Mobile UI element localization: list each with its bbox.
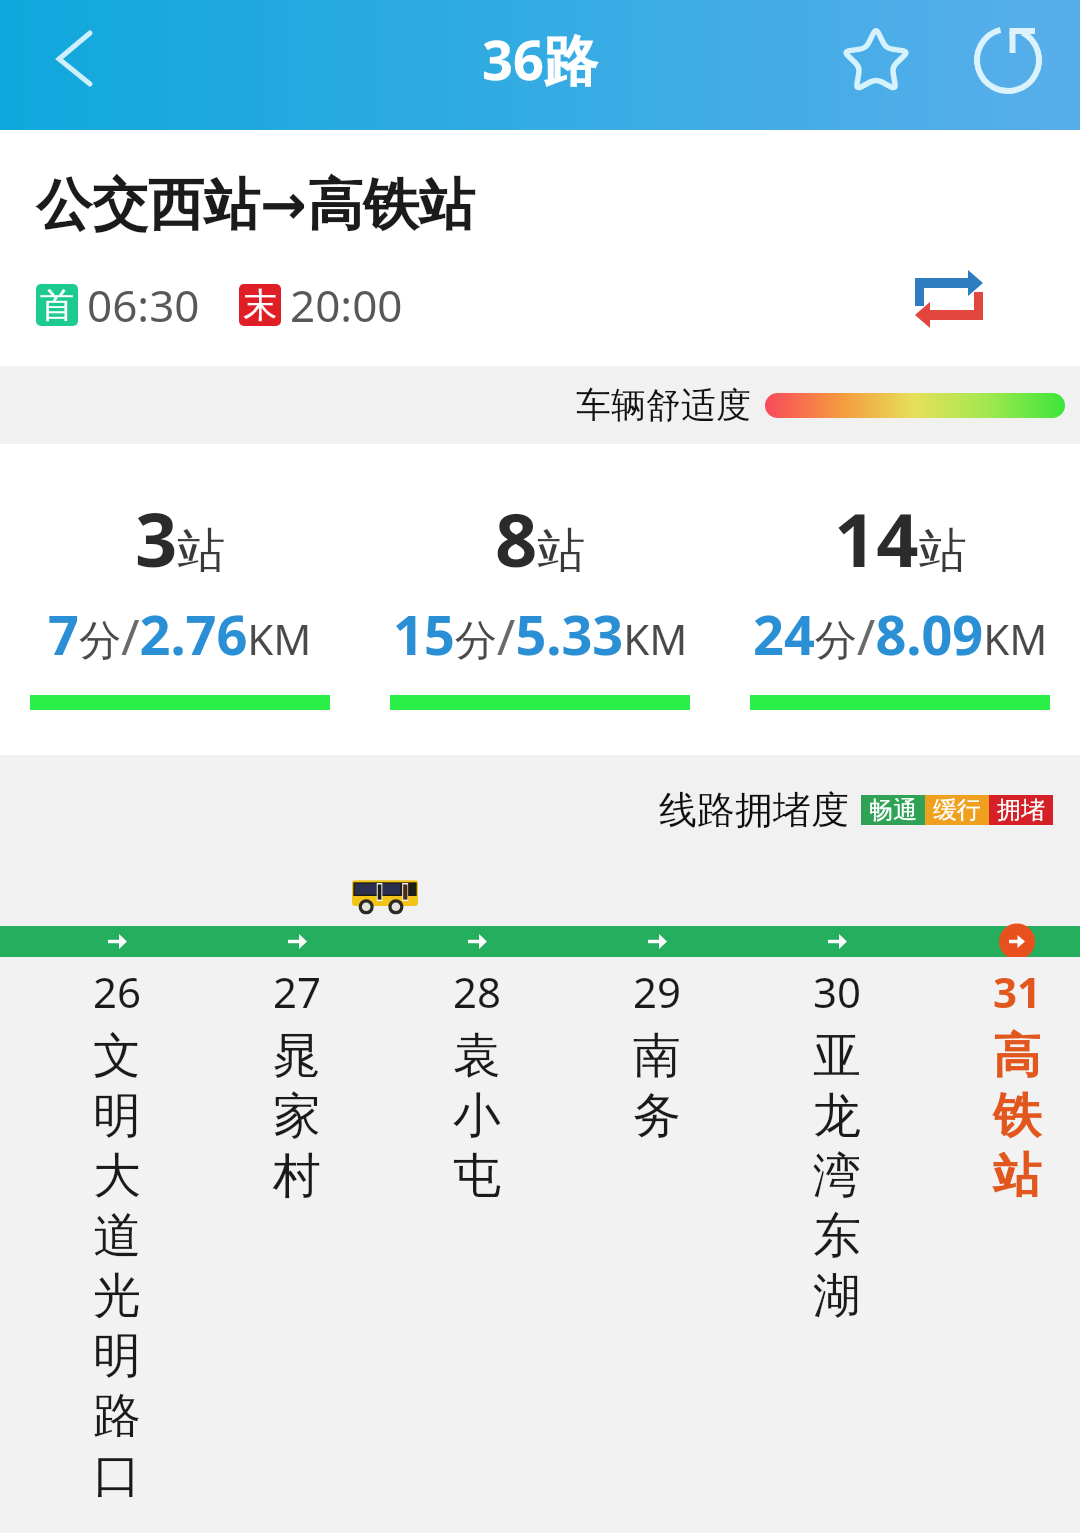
staticText: 3站 (135, 488, 226, 589)
staticText: 南 (633, 1026, 681, 1086)
staticText: 路 (93, 1386, 141, 1446)
staticText: 24分/8.09KM (753, 597, 1048, 671)
staticText: 首 (40, 284, 74, 326)
staticText: 畅通 (869, 795, 917, 825)
staticText: 末 (243, 284, 277, 326)
staticText: 36路 (482, 22, 598, 96)
staticText: 大 (93, 1146, 141, 1206)
staticText: 线路拥堵度 (659, 786, 849, 834)
staticText: 30 (813, 963, 862, 1020)
staticText: 口 (93, 1446, 141, 1506)
staticText: 小 (453, 1086, 501, 1146)
button[interactable]: 30 (752, 957, 922, 1533)
staticText: 湖 (813, 1266, 861, 1326)
button[interactable]: Favorite (836, 25, 916, 105)
button[interactable]: 31 (932, 957, 1080, 1533)
staticText: 晁 (273, 1026, 321, 1086)
staticText: 铁 (993, 1086, 1041, 1146)
staticText: 明 (93, 1086, 141, 1146)
staticText: 文 (93, 1026, 141, 1086)
staticText: 家 (273, 1086, 321, 1146)
staticText: 06:30 (87, 275, 200, 335)
staticText: 袁 (453, 1026, 501, 1086)
staticText: 湾 (813, 1146, 861, 1206)
staticText: 29 (633, 963, 682, 1020)
staticText: 公交西站→高铁站 (36, 170, 475, 241)
staticText: 8站 (495, 488, 586, 589)
button[interactable]: Swap direction (894, 247, 1004, 351)
staticText: 26 (93, 963, 142, 1020)
staticText: 站 (993, 1146, 1041, 1206)
staticText: 拥堵 (997, 795, 1045, 825)
staticText: 屯 (453, 1146, 501, 1206)
staticText: 27 (273, 963, 322, 1020)
button[interactable]: Refresh (968, 25, 1048, 105)
button[interactable]: 26 (32, 957, 202, 1533)
staticText: 31 (993, 963, 1042, 1020)
staticText: 20:00 (290, 275, 403, 335)
button[interactable]: 29 (572, 957, 742, 1533)
other: Bus position (352, 878, 418, 914)
button[interactable]: 27 (212, 957, 382, 1533)
button[interactable]: Back (34, 25, 114, 105)
staticText: 东 (813, 1206, 861, 1266)
staticText: 缓行 (933, 795, 981, 825)
staticText: 14站 (834, 488, 967, 589)
staticText: 村 (273, 1146, 321, 1206)
staticText: 明 (93, 1326, 141, 1386)
staticText: 龙 (813, 1086, 861, 1146)
button[interactable]: 28 (392, 957, 562, 1533)
staticText: 务 (633, 1086, 681, 1146)
staticText: 道 (93, 1206, 141, 1266)
staticText: 7分/2.76KM (48, 597, 312, 671)
staticText: 高 (993, 1026, 1041, 1086)
staticText: 光 (93, 1266, 141, 1326)
staticText: 亚 (813, 1026, 861, 1086)
staticText: 15分/5.33KM (393, 597, 688, 671)
staticText: 28 (453, 963, 502, 1020)
staticText: 车辆舒适度 (576, 383, 751, 427)
